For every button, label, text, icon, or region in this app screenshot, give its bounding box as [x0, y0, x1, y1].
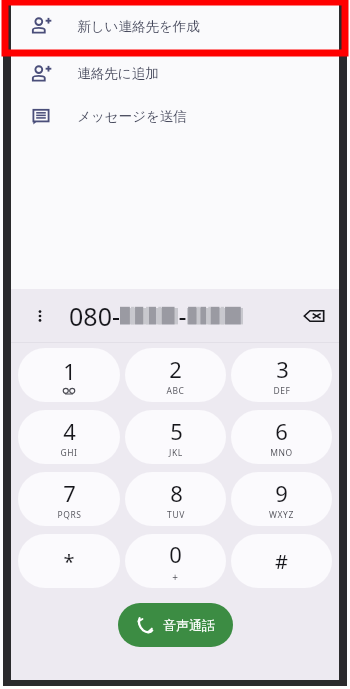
button[interactable]: More options [25, 301, 55, 331]
staticText: DEF [273, 385, 291, 397]
button[interactable]: 連絡先に追加 [11, 52, 339, 95]
button[interactable]: 9 [231, 472, 332, 526]
staticText: ABC [166, 385, 185, 397]
staticText: GHI [60, 447, 78, 459]
staticText: WXYZ [269, 509, 294, 521]
button[interactable]: 新しい連絡先を作成 [11, 0, 339, 52]
staticText: 新しい連絡先を作成 [77, 18, 200, 35]
staticText: 8 [170, 478, 183, 508]
button[interactable]: メッセージを送信 [11, 95, 339, 138]
button[interactable]: 6 [231, 410, 332, 464]
staticText: 7 [63, 478, 76, 508]
button[interactable]: 7 [18, 472, 120, 526]
staticText: 1 [63, 356, 76, 386]
button[interactable]: # [231, 534, 332, 588]
staticText: # [275, 548, 288, 575]
staticText: 2 [169, 354, 182, 384]
button[interactable]: * [18, 534, 120, 588]
staticText: 9 [275, 478, 288, 508]
staticText: * [63, 548, 75, 575]
staticText: JKL [169, 447, 183, 459]
staticText: PQRS [57, 509, 82, 521]
button[interactable]: Backspace [297, 299, 331, 333]
staticText: 3 [276, 354, 289, 384]
staticText: メッセージを送信 [77, 108, 187, 125]
button[interactable]: 3 [231, 348, 332, 402]
button[interactable]: 5 [125, 410, 226, 464]
button[interactable]: 音声通話 [118, 603, 233, 647]
staticText: - [178, 299, 187, 333]
button[interactable]: 8 [125, 472, 226, 526]
button[interactable]: 2 [125, 348, 226, 402]
staticText: MNO [270, 447, 293, 459]
staticText: 音声通話 [163, 617, 215, 633]
staticText: TUV [167, 509, 185, 521]
staticText: 4 [63, 416, 76, 446]
staticText: + [172, 570, 179, 584]
staticText: 080- [69, 299, 120, 333]
staticText: 5 [170, 416, 183, 446]
button[interactable]: 4 [18, 410, 120, 464]
staticText: 0 [169, 539, 182, 569]
button[interactable]: 0 [125, 534, 226, 588]
staticText: 6 [275, 416, 288, 446]
button[interactable]: 1 [18, 348, 120, 402]
staticText: 連絡先に追加 [77, 65, 159, 82]
